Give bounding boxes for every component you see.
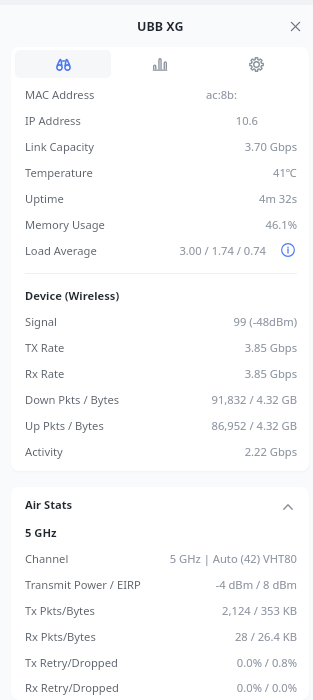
button[interactable]: IP Address: [11, 107, 309, 133]
staticText: 3.85 Gbps: [244, 340, 297, 355]
button[interactable]: Tx Pkts/Bytes: [11, 597, 309, 623]
button[interactable]: Statistics: [111, 50, 208, 78]
staticText: Rx Pkts/Bytes: [25, 629, 96, 644]
staticText: Uptime: [25, 191, 64, 206]
staticText: Device (Wireless): [25, 288, 120, 303]
staticText: Tx Retry/Dropped: [25, 655, 118, 670]
staticText: ac:8b:: [206, 87, 237, 102]
staticText: Up Pkts / Bytes: [25, 418, 104, 433]
staticText: UBB XG: [137, 18, 184, 35]
staticText: 4m 32s: [259, 191, 297, 206]
staticText: 3.70 Gbps: [244, 139, 297, 154]
staticText: 3.85 Gbps: [244, 366, 297, 381]
staticText: Down Pkts / Bytes: [25, 392, 120, 407]
staticText: Signal: [25, 314, 57, 329]
button[interactable]: Load Average: [11, 237, 309, 263]
button[interactable]: Down Pkts / Bytes: [11, 386, 309, 412]
button[interactable]: Rx Retry/Dropped: [11, 675, 309, 700]
button[interactable]: Channel: [11, 545, 309, 571]
button[interactable]: Settings: [208, 50, 305, 78]
staticText: 3.00 / 1.74 / 0.74: [179, 243, 266, 258]
staticText: Channel: [25, 551, 69, 566]
button[interactable]: Rx Pkts/Bytes: [11, 623, 309, 649]
button[interactable]: Rx Rate: [11, 360, 309, 386]
staticText: MAC Address: [25, 87, 95, 102]
button[interactable]: Close: [283, 14, 307, 38]
staticText: TX Rate: [25, 340, 65, 355]
staticText: 41℃: [273, 165, 297, 180]
staticText: 86,952 / 4.32 GB: [211, 418, 297, 433]
staticText: Temperature: [25, 165, 93, 180]
button[interactable]: Up Pkts / Bytes: [11, 412, 309, 438]
staticText: Link Capacity: [25, 139, 95, 154]
button[interactable]: Memory Usage: [11, 211, 309, 237]
staticText: 99 (-48dBm): [233, 314, 297, 329]
staticText: Rx Rate: [25, 366, 65, 381]
staticText: 5 GHz | Auto (42) VHT80: [169, 551, 297, 566]
staticText: 0.0% / 0.8%: [236, 655, 297, 670]
button[interactable]: Temperature: [11, 159, 309, 185]
button[interactable]: Tx Retry/Dropped: [11, 649, 309, 675]
button[interactable]: Activity: [11, 438, 309, 464]
staticText: IP Address: [25, 113, 81, 128]
button[interactable]: MAC Address: [11, 81, 309, 107]
button[interactable]: Uptime: [11, 185, 309, 211]
staticText: Air Stats: [25, 497, 73, 512]
staticText: Activity: [25, 444, 63, 459]
staticText: 0.0% / 0.0%: [236, 680, 297, 695]
button[interactable]: TX Rate: [11, 334, 309, 360]
button[interactable]: Link Capacity: [11, 133, 309, 159]
staticText: Transmit Power / EIRP: [25, 577, 141, 592]
staticText: Tx Pkts/Bytes: [25, 603, 95, 618]
staticText: -4 dBm / 8 dBm: [215, 577, 297, 592]
staticText: 2.22 Gbps: [244, 444, 297, 459]
button[interactable]: Air Stats: [11, 491, 309, 517]
staticText: Rx Retry/Dropped: [25, 680, 119, 695]
staticText: 10.6: [235, 113, 258, 128]
staticText: Memory Usage: [25, 217, 105, 232]
staticText: 5 GHz: [25, 525, 57, 540]
button[interactable]: Transmit Power / EIRP: [11, 571, 309, 597]
button[interactable]: Signal: [11, 308, 309, 334]
staticText: 2,124 / 353 KB: [222, 603, 297, 618]
button[interactable]: Overview: [15, 50, 111, 78]
staticText: Load Average: [25, 243, 97, 258]
staticText: 28 / 26.4 KB: [234, 629, 297, 644]
staticText: 46.1%: [265, 217, 297, 232]
staticText: 91,832 / 4.32 GB: [211, 392, 297, 407]
